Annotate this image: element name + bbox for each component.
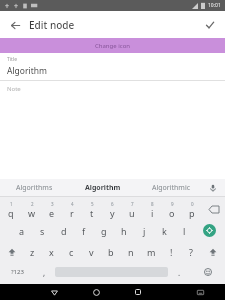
staticText: l (183, 225, 186, 237)
staticText: Change icon (95, 42, 130, 50)
button[interactable]: Switch keyboard (183, 284, 218, 300)
button[interactable]: 3 (42, 199, 62, 220)
button[interactable]: 7 (122, 199, 142, 220)
button[interactable]: 6 (102, 199, 122, 220)
button[interactable]: Note (0, 85, 225, 93)
staticText: Algorithm (85, 183, 121, 193)
button[interactable]: b (101, 241, 121, 262)
button[interactable]: x (42, 241, 61, 262)
staticText: b (108, 246, 114, 258)
staticText: ?123 (11, 268, 24, 276)
button[interactable]: Title (0, 56, 225, 80)
button[interactable]: 0 (182, 199, 202, 220)
button[interactable]: 1 (0, 199, 21, 220)
button[interactable]: s (32, 220, 53, 241)
staticText: 10:01 (208, 2, 221, 9)
staticText: 4 (71, 201, 74, 207)
button[interactable]: g (94, 220, 114, 241)
button[interactable]: Emoji (190, 262, 225, 282)
staticText: m (147, 246, 156, 258)
staticText: , (43, 267, 46, 278)
staticText: o (169, 207, 175, 219)
staticText: 1 (10, 201, 13, 207)
staticText: ? (189, 246, 193, 258)
staticText: 6 (111, 201, 114, 207)
staticText: 9 (171, 201, 174, 207)
staticText: v (89, 246, 94, 258)
staticText: x (49, 246, 54, 258)
button[interactable]: n (121, 241, 141, 262)
staticText: 3 (51, 201, 54, 207)
button[interactable]: d (53, 220, 74, 241)
button[interactable]: a (11, 220, 32, 241)
staticText: c (69, 246, 74, 258)
button[interactable]: Back (5, 15, 25, 35)
staticText: k (162, 225, 167, 237)
staticText: g (101, 225, 107, 237)
staticText: r (70, 207, 74, 219)
button[interactable]: v (81, 241, 101, 262)
button[interactable]: z (23, 241, 42, 262)
staticText: Edit node (29, 18, 75, 32)
button[interactable]: k (154, 220, 174, 241)
staticText: 2 (31, 201, 34, 207)
button[interactable]: ? (181, 241, 201, 262)
staticText: t (90, 207, 94, 219)
staticText: u (129, 207, 135, 219)
staticText: s (40, 225, 45, 237)
button[interactable]: l (174, 220, 194, 241)
staticText: h (121, 225, 127, 237)
button[interactable]: Save (200, 15, 220, 35)
staticText: 5 (91, 201, 94, 207)
staticText: i (151, 207, 154, 219)
button[interactable]: Recents (117, 284, 159, 300)
staticText: p (189, 207, 195, 219)
staticText: Note (7, 85, 21, 93)
button[interactable]: j (134, 220, 154, 241)
button[interactable]: 5 (82, 199, 102, 220)
staticText: y (110, 207, 115, 219)
button[interactable]: Change icon (0, 38, 225, 53)
button[interactable]: Backspace (202, 199, 225, 220)
staticText: e (49, 207, 55, 219)
staticText: Algorithms (16, 183, 53, 193)
staticText: 7 (131, 201, 134, 207)
staticText: f (82, 225, 86, 237)
button[interactable]: 4 (62, 199, 82, 220)
button[interactable]: h (114, 220, 134, 241)
button[interactable]: Enter (194, 220, 225, 241)
staticText: Algorithmic (152, 183, 191, 193)
staticText: Algorithm (7, 65, 47, 77)
staticText: d (61, 225, 67, 237)
button[interactable]: Shift (201, 241, 225, 262)
staticText: j (143, 225, 146, 237)
button[interactable]: , (34, 262, 55, 282)
staticText: ! (170, 246, 173, 258)
button[interactable]: Shift (0, 241, 23, 262)
button[interactable]: ! (161, 241, 181, 262)
staticText: Title (7, 56, 17, 63)
button[interactable]: Voice input (206, 181, 220, 195)
button[interactable]: Algorithmic (137, 179, 205, 196)
staticText: n (128, 246, 134, 258)
staticText: a (19, 225, 25, 237)
staticText: . (178, 267, 181, 278)
button[interactable]: . (168, 262, 190, 282)
button[interactable]: 8 (142, 199, 162, 220)
button[interactable]: 9 (162, 199, 182, 220)
staticText: w (28, 207, 36, 219)
button[interactable]: 2 (21, 199, 42, 220)
staticText: 0 (191, 201, 194, 207)
button[interactable]: c (61, 241, 81, 262)
button[interactable]: Back (34, 284, 75, 300)
button[interactable]: m (141, 241, 161, 262)
button[interactable]: ?123 (0, 262, 34, 282)
staticText: z (30, 246, 35, 258)
button[interactable]: Algorithms (0, 179, 69, 196)
button[interactable]: Home (75, 284, 117, 300)
button[interactable]: f (74, 220, 94, 241)
staticText: q (8, 207, 14, 219)
button[interactable]: Algorithm (69, 179, 137, 196)
staticText: 8 (151, 201, 154, 207)
